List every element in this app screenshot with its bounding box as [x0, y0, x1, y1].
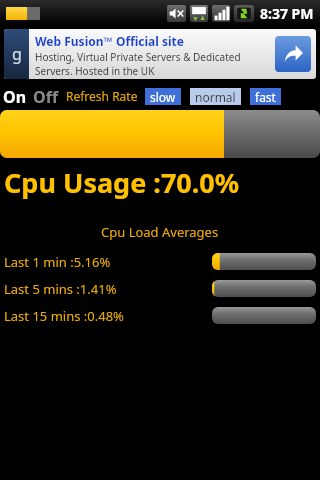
staticText: Last 5 mins :1.41% [4, 280, 117, 298]
staticText: Refresh Rate [66, 88, 138, 104]
button[interactable]: fast [255, 88, 276, 105]
staticText: Cpu Usage :70.0% [4, 164, 240, 201]
staticText: normal [195, 89, 236, 105]
staticText: Cpu Load Averages [101, 223, 219, 241]
button[interactable]: On [3, 86, 27, 106]
staticText: Off [33, 86, 59, 106]
button[interactable]: g [4, 29, 316, 79]
staticText: On [3, 86, 27, 106]
button[interactable]: Off [33, 86, 59, 106]
staticText: g [12, 43, 22, 65]
staticText: Hosting, Virtual Private Servers & Dedic… [35, 50, 241, 64]
staticText: fast [255, 89, 276, 105]
staticText: Last 15 mins :0.48% [4, 307, 124, 325]
staticText: Web Fusion™ Official site [35, 33, 184, 49]
staticText: 8:37 PM [260, 4, 314, 23]
staticText: Servers. Hosted in the UK [35, 64, 155, 78]
button[interactable]: normal [195, 88, 236, 105]
button[interactable]: slow [150, 88, 176, 105]
staticText: Last 1 min :5.16% [4, 253, 111, 271]
staticText: slow [150, 89, 176, 105]
button[interactable]: Open ad [275, 36, 311, 72]
